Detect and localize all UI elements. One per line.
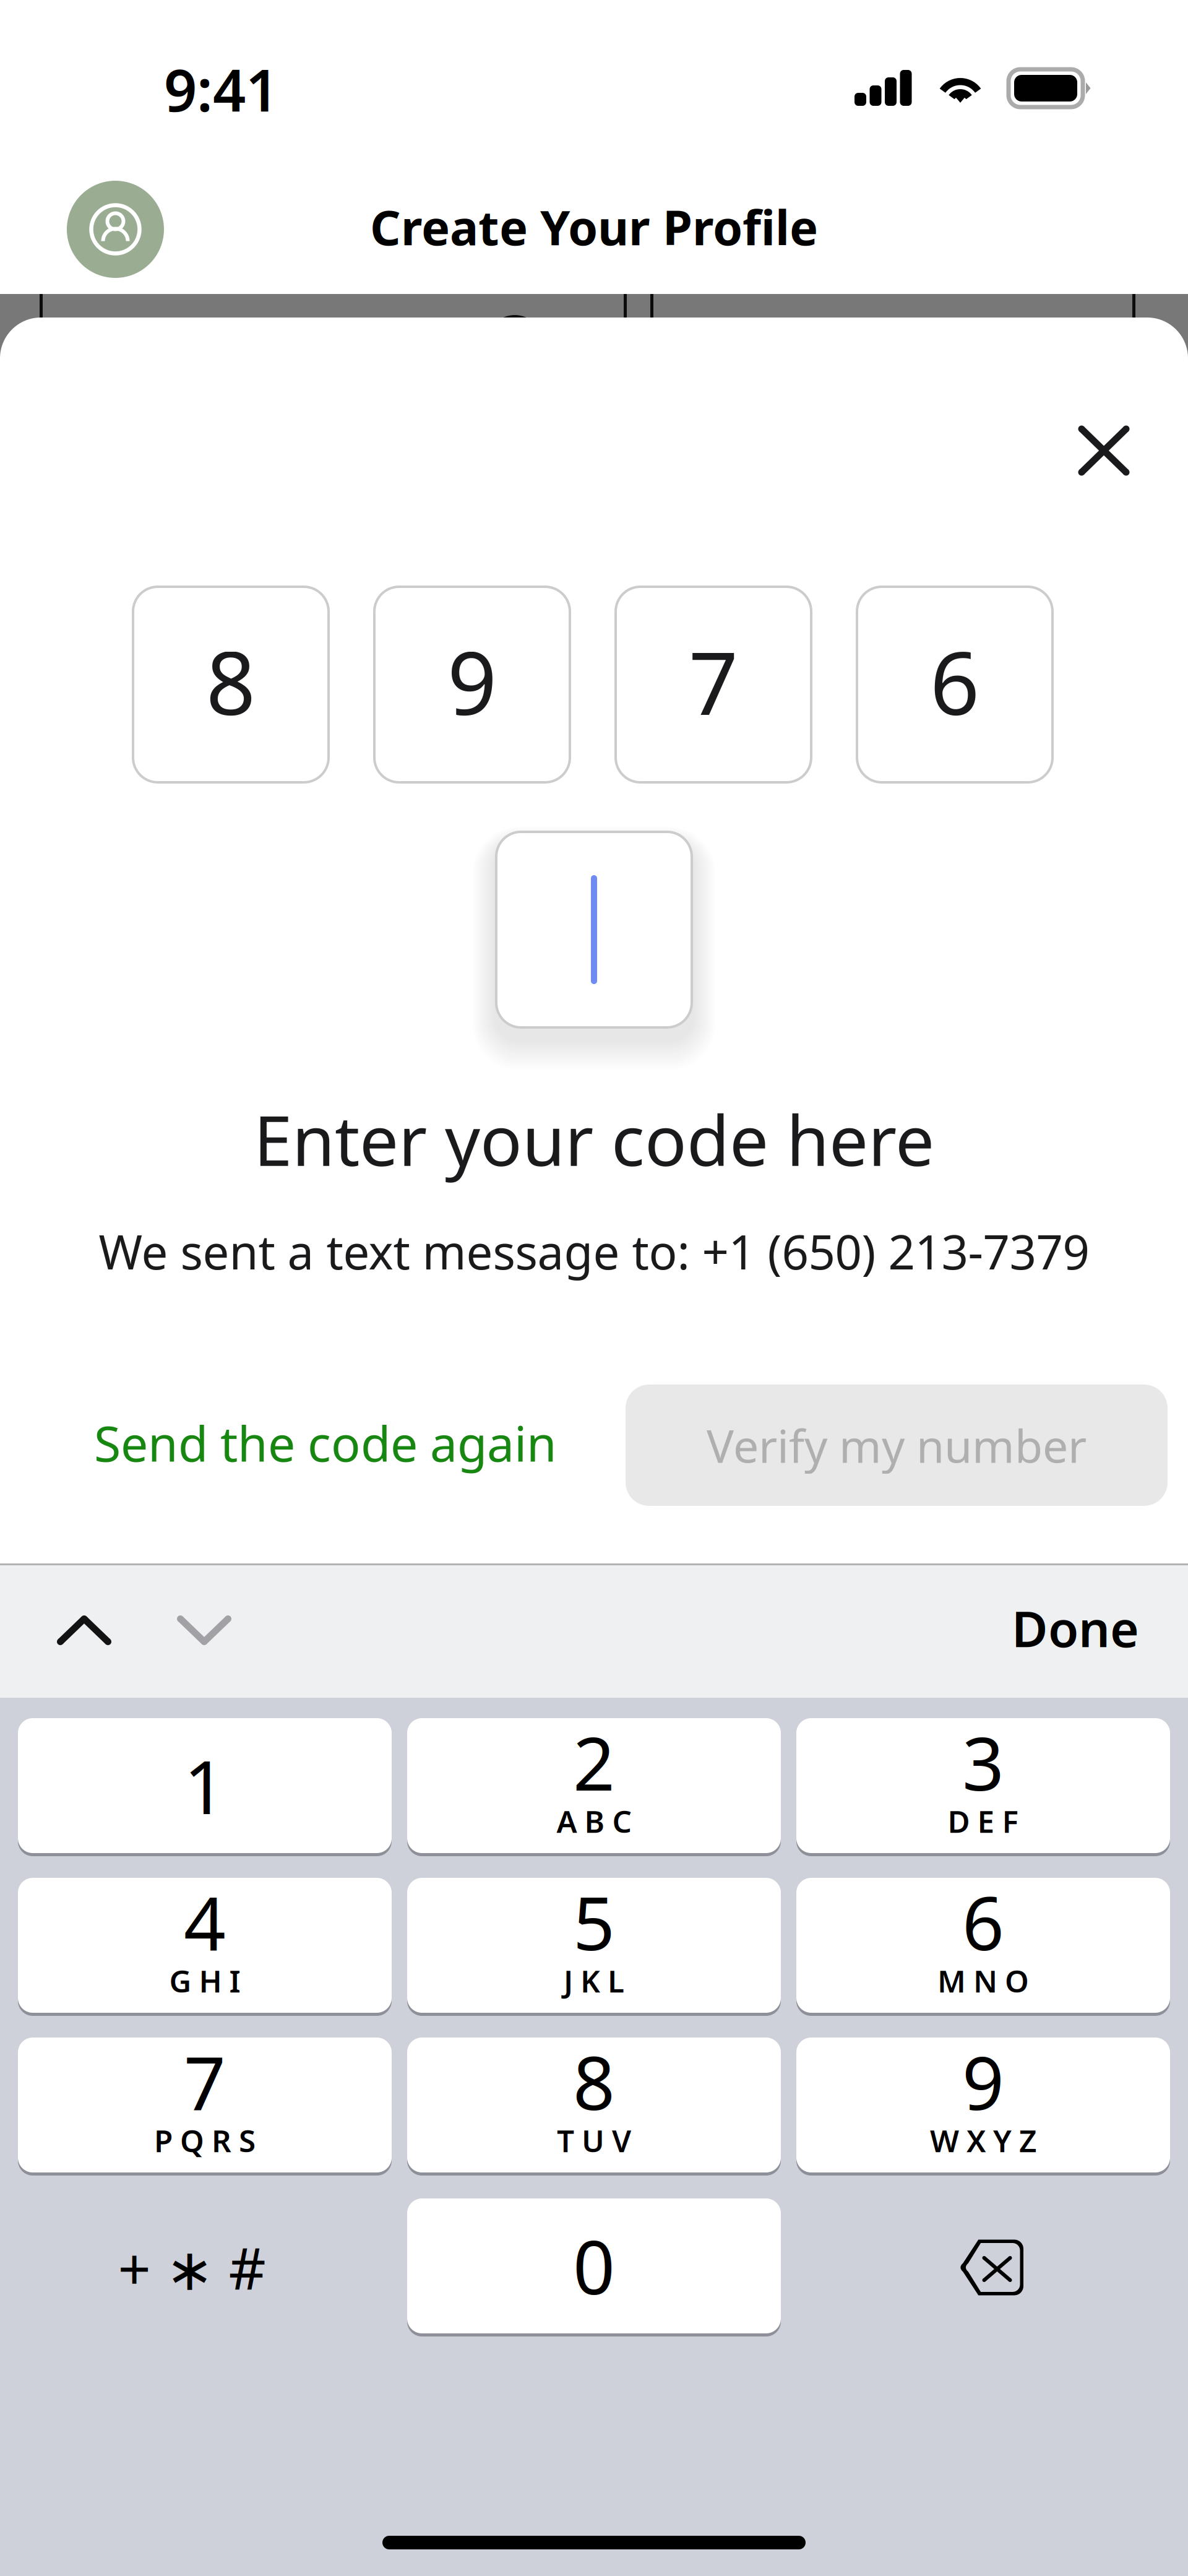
button[interactable]: 2 <box>407 1718 781 1856</box>
staticText: 4 <box>184 1873 226 1971</box>
button[interactable]: 6 <box>796 1878 1170 2016</box>
staticText: 0 <box>573 2217 615 2315</box>
button[interactable]: Verify my number <box>626 1385 1168 1506</box>
staticText: WXYZ <box>930 2120 1036 2161</box>
button[interactable]: 8 <box>407 2038 781 2176</box>
staticText: 9 <box>962 2033 1004 2130</box>
staticText: We sent a text message to: +1 (650) 213-… <box>99 1220 1089 1282</box>
staticText: DEF <box>948 1801 1019 1841</box>
staticText: Create Your Profile <box>370 195 818 259</box>
staticText: 8 <box>573 2033 615 2130</box>
staticText: GHI <box>169 1960 240 2001</box>
button[interactable]: Symbols and punctuation <box>18 2198 392 2336</box>
button[interactable]: Done <box>1012 1595 1139 1661</box>
button[interactable]: 1 <box>18 1718 392 1856</box>
button[interactable]: Next field <box>177 1615 231 1645</box>
button[interactable]: 5 <box>407 1878 781 2016</box>
staticText: 9:41 <box>164 51 278 127</box>
staticText: 7 <box>689 624 738 739</box>
button[interactable]: 4 <box>18 1878 392 2016</box>
staticText: 5 <box>573 1873 615 1971</box>
staticText: + ∗ # <box>118 2229 266 2306</box>
staticText: MNO <box>937 1960 1029 2001</box>
button[interactable]: 7 <box>18 2038 392 2176</box>
staticText: Send the code again <box>94 1410 557 1475</box>
staticText: PQRS <box>154 2120 256 2161</box>
staticText: 8 <box>206 624 256 739</box>
button[interactable]: 3 <box>796 1718 1170 1856</box>
staticText: 1 <box>184 1737 226 1834</box>
staticText: JKL <box>564 1960 624 2001</box>
staticText: 6 <box>962 1873 1004 1971</box>
button[interactable]: Close <box>1061 408 1147 493</box>
staticText: Done <box>1012 1595 1139 1661</box>
button[interactable]: Send the code again <box>94 1403 564 1483</box>
staticText: TUV <box>557 2120 631 2161</box>
button[interactable]: Previous field <box>57 1615 111 1645</box>
button[interactable]: 0 <box>407 2198 781 2336</box>
staticText: 9 <box>447 624 497 739</box>
staticText: 3 <box>962 1713 1004 1811</box>
staticText: ABC <box>557 1801 631 1841</box>
staticText: 2 <box>573 1713 615 1811</box>
staticText: Verify my number <box>707 1415 1087 1475</box>
button[interactable]: Delete <box>796 2198 1170 2336</box>
staticText: 6 <box>930 624 979 739</box>
staticText: Enter your code here <box>254 1093 934 1185</box>
button[interactable]: Profile <box>67 181 164 278</box>
staticText: 7 <box>184 2033 226 2130</box>
button[interactable]: 9 <box>796 2038 1170 2176</box>
